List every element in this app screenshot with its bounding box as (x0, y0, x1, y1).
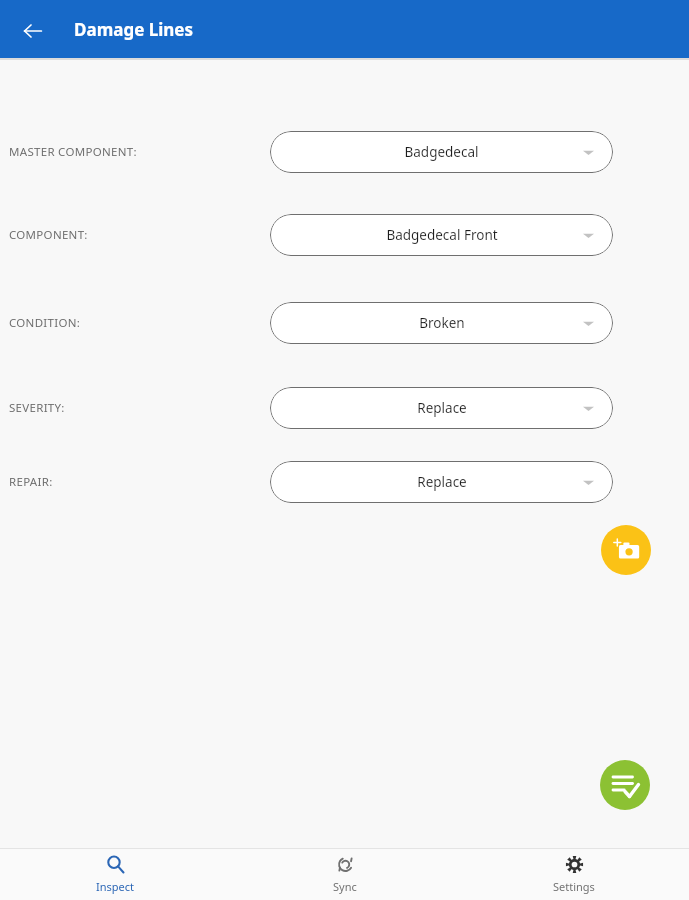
staticText: Settings (553, 879, 595, 894)
button[interactable]: Save damage lines (600, 760, 650, 810)
staticText: Broken (419, 314, 465, 332)
button[interactable]: Broken (270, 302, 613, 344)
staticText: MASTER COMPONENT: (9, 144, 137, 160)
staticText: Replace (417, 473, 467, 491)
button[interactable]: Inspect (40, 849, 190, 900)
staticText: CONDITION: (9, 315, 81, 331)
staticText: Damage Lines (74, 18, 194, 41)
button[interactable]: Take photo (601, 525, 651, 575)
staticText: Replace (417, 399, 467, 417)
staticText: Badgedecal (404, 143, 479, 161)
staticText: Badgedecal Front (386, 226, 498, 244)
staticText: SEVERITY: (9, 400, 65, 416)
button[interactable]: Replace (270, 461, 613, 503)
button[interactable]: Back (15, 13, 51, 49)
button[interactable]: Replace (270, 387, 613, 429)
button[interactable]: Settings (499, 849, 649, 900)
button[interactable]: Badgedecal (270, 131, 613, 173)
staticText: Inspect (96, 879, 135, 894)
staticText: Sync (333, 879, 357, 894)
staticText: REPAIR: (9, 474, 53, 490)
button[interactable]: Badgedecal Front (270, 214, 613, 256)
staticText: COMPONENT: (9, 227, 88, 243)
button[interactable]: Sync (270, 849, 420, 900)
